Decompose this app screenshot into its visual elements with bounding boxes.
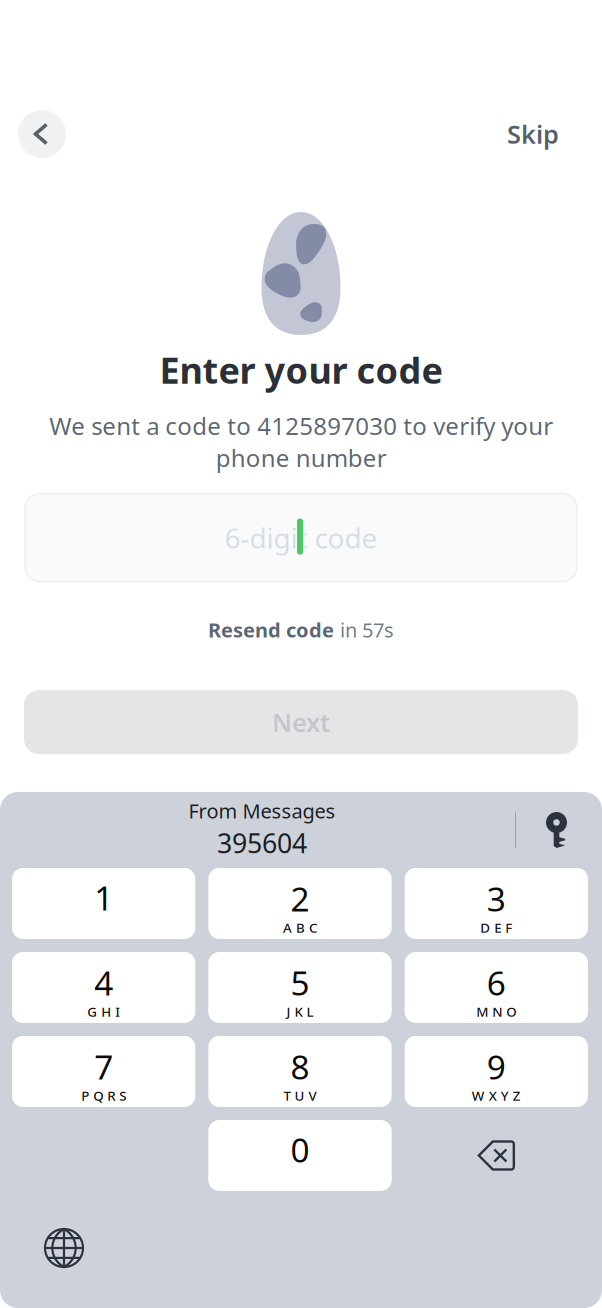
button[interactable]: Skip: [507, 117, 559, 151]
staticText: D E F: [480, 919, 512, 936]
staticText: Next: [272, 705, 330, 739]
staticText: We sent a code to 4125897030 to verify y…: [49, 410, 553, 473]
staticText: 2: [290, 876, 309, 921]
button[interactable]: Next: [0, 690, 602, 754]
button[interactable]: 1: [12, 868, 195, 939]
staticText: 8: [290, 1044, 309, 1089]
staticText: 395604: [217, 825, 307, 860]
button[interactable]: 6: [405, 952, 588, 1023]
staticText: Skip: [507, 117, 559, 151]
staticText: 6-digit code: [224, 519, 377, 556]
staticText: W X Y Z: [472, 1087, 521, 1104]
staticText: Enter your code: [159, 346, 442, 394]
staticText: 0: [290, 1127, 309, 1172]
button[interactable]: 7: [12, 1036, 195, 1107]
button[interactable]: Delete: [405, 1120, 588, 1191]
staticText: J K L: [286, 1003, 313, 1020]
button[interactable]: Resend code: [208, 617, 394, 643]
button[interactable]: 0: [208, 1120, 392, 1191]
staticText: 5: [290, 960, 309, 1005]
button[interactable]: 9: [405, 1036, 588, 1107]
staticText: in 57s: [340, 617, 394, 643]
button[interactable]: Next keyboard: [35, 1219, 93, 1277]
staticText: M N O: [476, 1003, 516, 1020]
staticText: 3: [487, 876, 506, 921]
button[interactable]: 8: [208, 1036, 392, 1107]
staticText: 1: [94, 875, 113, 920]
staticText: A B C: [283, 919, 317, 936]
button[interactable]: Passwords: [536, 804, 577, 856]
staticText: G H I: [87, 1003, 120, 1020]
staticText: 4: [94, 960, 113, 1005]
staticText: 9: [487, 1044, 506, 1089]
button[interactable]: 4: [12, 952, 195, 1023]
button[interactable]: 2: [208, 868, 392, 939]
button[interactable]: 3: [405, 868, 588, 939]
staticText: 7: [94, 1044, 113, 1089]
button[interactable]: Back: [18, 110, 66, 158]
staticText: Resend code: [208, 617, 334, 643]
staticText: 6: [487, 960, 506, 1005]
button[interactable]: 5: [208, 952, 392, 1023]
staticText: From Messages: [188, 797, 335, 824]
staticText: P Q R S: [81, 1087, 126, 1104]
staticText: T U V: [283, 1087, 316, 1104]
